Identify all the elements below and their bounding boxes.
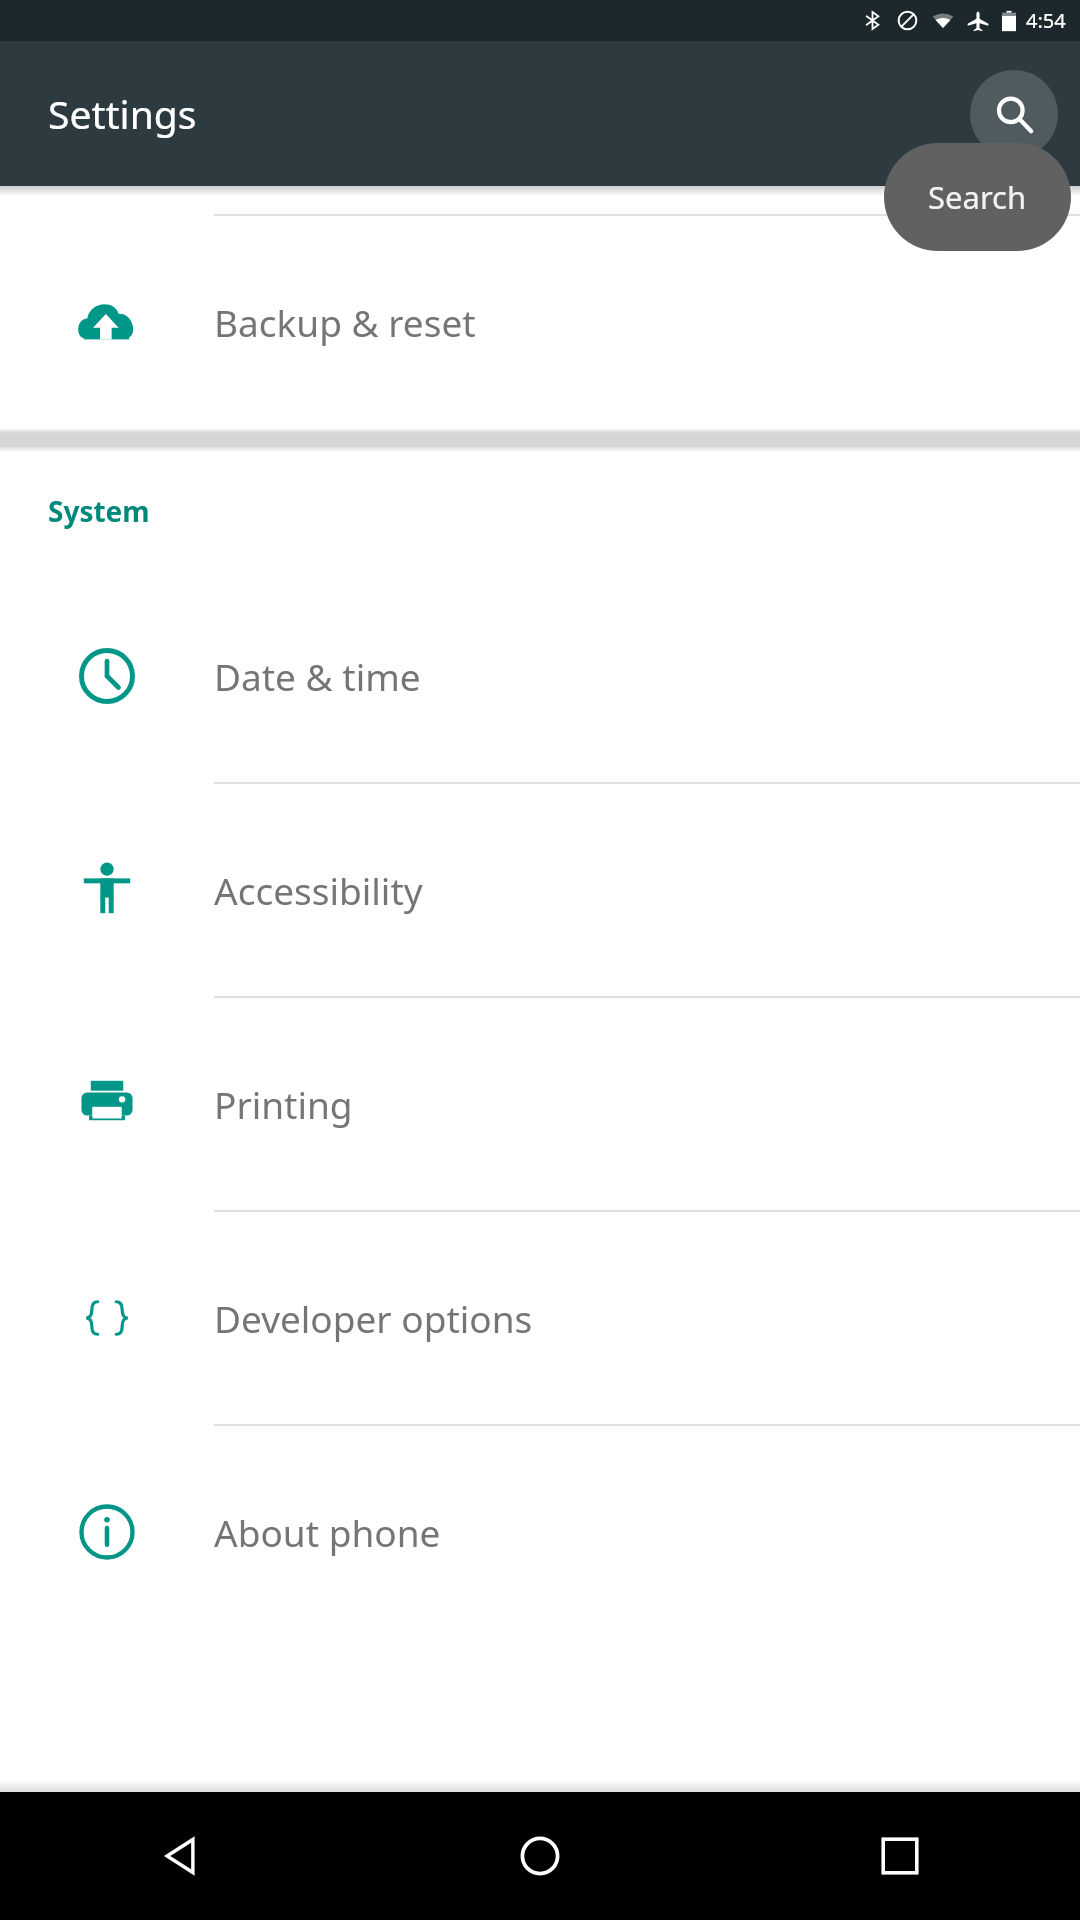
staticText: Backup & reset <box>214 297 476 347</box>
staticText: About phone <box>214 1507 441 1557</box>
button[interactable]: Developer options <box>0 1212 1080 1424</box>
button[interactable]: Back <box>0 1792 360 1920</box>
button[interactable]: Accessibility <box>0 784 1080 996</box>
staticText: Accessibility <box>214 865 423 915</box>
staticText: System <box>48 492 150 530</box>
staticText: Search <box>928 176 1027 218</box>
button[interactable]: Date & time <box>0 570 1080 782</box>
button[interactable]: Home <box>360 1792 720 1920</box>
staticText: Settings <box>48 87 197 140</box>
staticText: Developer options <box>214 1293 533 1343</box>
staticText: 4:54 <box>1026 7 1066 34</box>
button[interactable]: About phone <box>0 1426 1080 1638</box>
button[interactable]: Recent apps <box>720 1792 1080 1920</box>
button[interactable]: Printing <box>0 998 1080 1210</box>
button[interactable]: Search <box>970 70 1058 158</box>
button[interactable]: Backup & reset <box>0 216 1080 428</box>
staticText: Printing <box>214 1079 353 1129</box>
staticText: Date & time <box>214 651 421 701</box>
